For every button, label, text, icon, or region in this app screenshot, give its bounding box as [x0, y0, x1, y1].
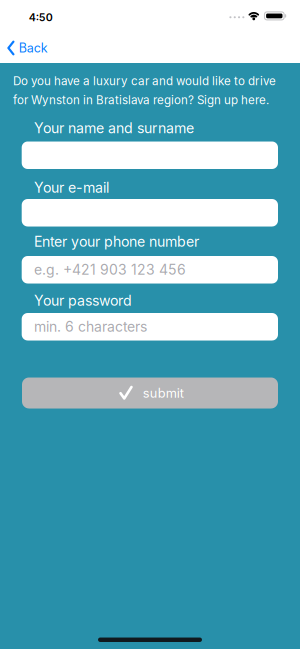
button[interactable]: Enter your phone number: [22, 256, 278, 283]
staticText: 4:50: [29, 11, 53, 24]
staticText: Your name and surname: [34, 119, 194, 137]
staticText: e.g. +421 903 123 456: [34, 261, 186, 278]
staticText: Your password: [34, 292, 132, 309]
staticText: Do you have a luxury car and would like …: [13, 74, 276, 88]
button[interactable]: Back: [7, 37, 48, 59]
button[interactable]: Your password: [22, 313, 278, 340]
button[interactable]: submit: [22, 377, 278, 408]
button[interactable]: Your e-mail: [22, 199, 278, 226]
staticText: submit: [143, 385, 184, 401]
button[interactable]: Your name and surname: [22, 141, 278, 169]
staticText: min. 6 characters: [34, 318, 147, 335]
staticText: Enter your phone number: [34, 233, 199, 250]
staticText: Back: [19, 40, 48, 56]
staticText: Your e-mail: [34, 179, 109, 196]
staticText: for Wynston in Bratislava region? Sign u…: [13, 93, 269, 107]
